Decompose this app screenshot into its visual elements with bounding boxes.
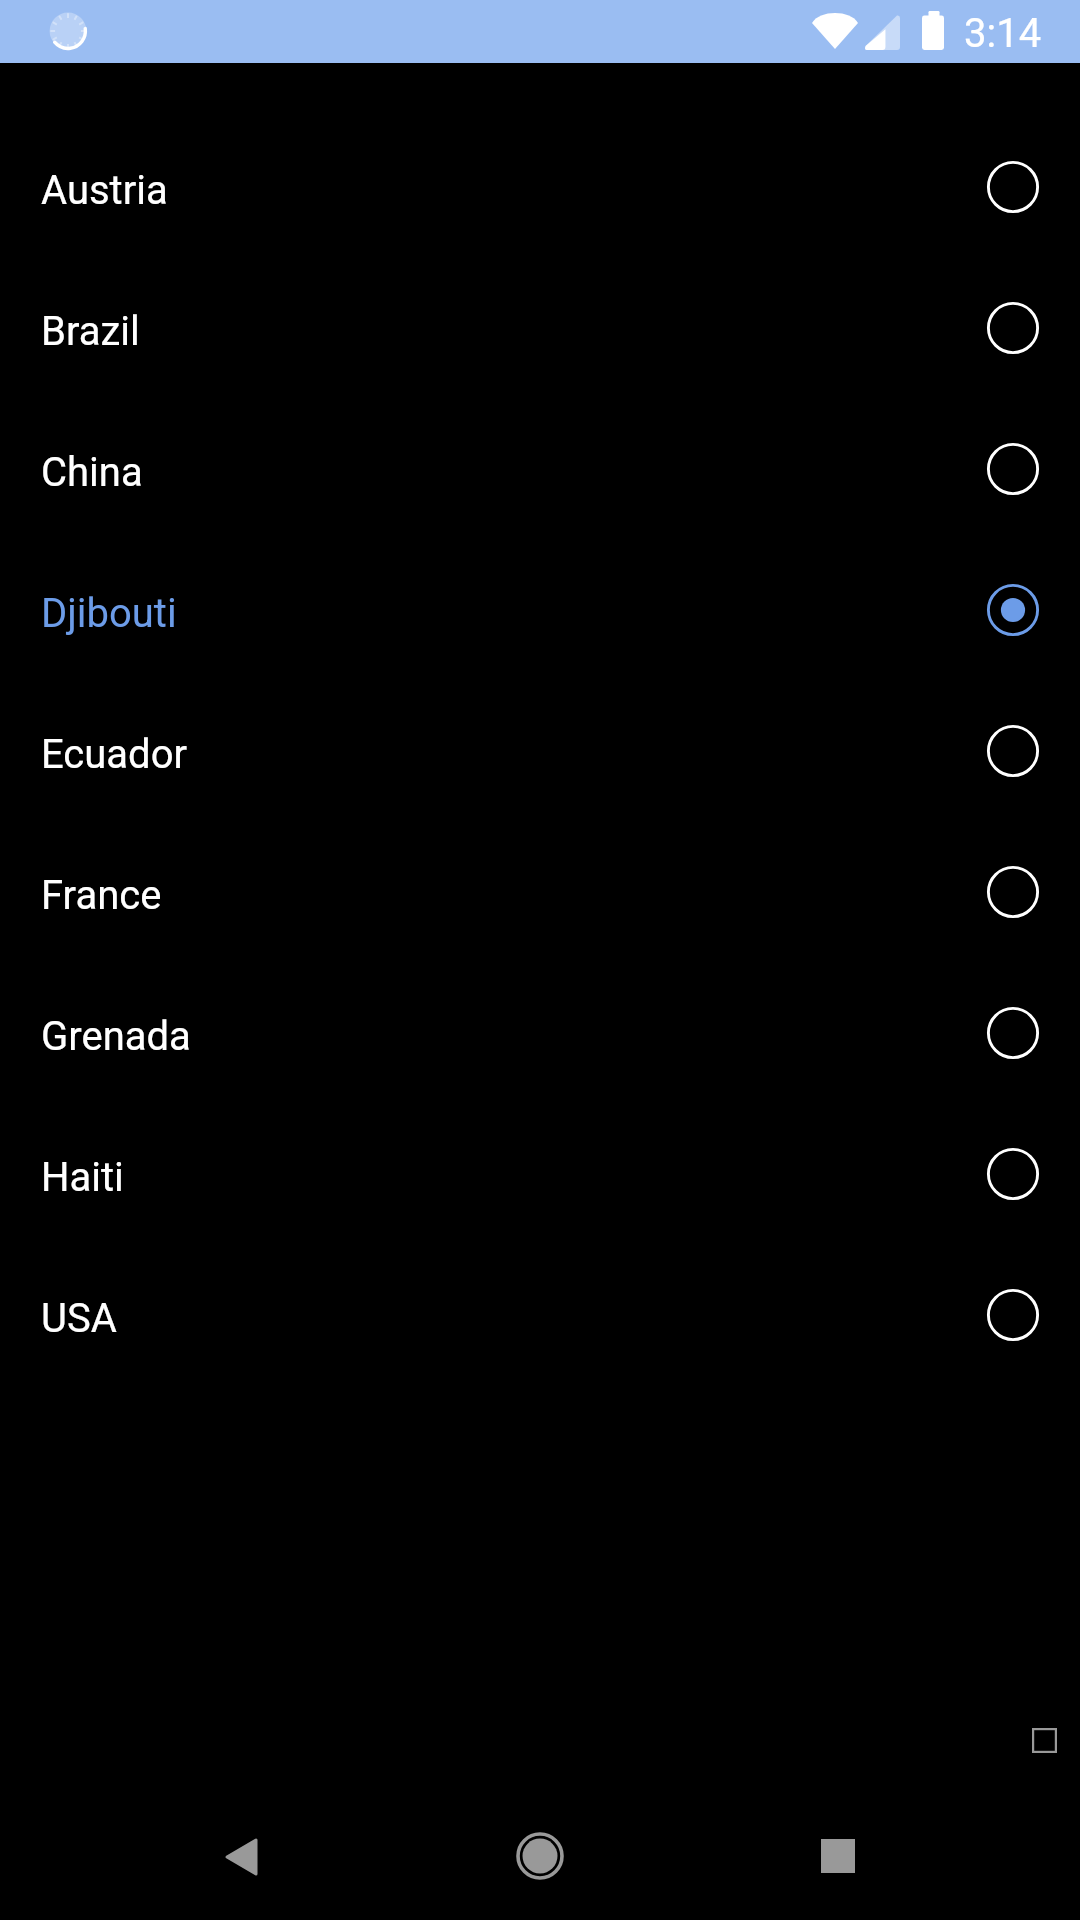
- staticText: China: [41, 449, 143, 496]
- staticText: Grenada: [41, 1013, 191, 1060]
- button[interactable]: Back: [195, 1811, 287, 1903]
- button[interactable]: France: [0, 821, 1080, 962]
- button[interactable]: Austria: [0, 116, 1080, 257]
- button[interactable]: Haiti: [0, 1103, 1080, 1244]
- button[interactable]: Home: [494, 1810, 586, 1902]
- button[interactable]: Recent apps: [792, 1810, 884, 1902]
- button[interactable]: Grenada: [0, 962, 1080, 1103]
- staticText: USA: [41, 1295, 117, 1342]
- staticText: Austria: [41, 167, 168, 214]
- staticText: Djibouti: [41, 590, 177, 637]
- staticText: Ecuador: [41, 731, 188, 778]
- button[interactable]: USA: [0, 1244, 1080, 1385]
- button[interactable]: China: [0, 398, 1080, 539]
- button[interactable]: Ecuador: [0, 680, 1080, 821]
- staticText: Haiti: [41, 1154, 124, 1201]
- staticText: France: [41, 872, 162, 919]
- staticText: Brazil: [41, 308, 140, 355]
- button[interactable]: Djibouti: [0, 539, 1080, 680]
- staticText: 3:14: [964, 10, 1042, 57]
- button[interactable]: Brazil: [0, 257, 1080, 398]
